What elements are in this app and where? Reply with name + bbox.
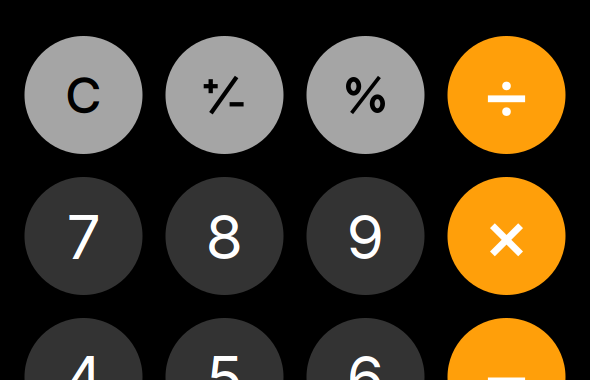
staticText: C: [65, 65, 102, 125]
button[interactable]: 7: [24, 177, 142, 295]
button[interactable]: Divide: [447, 36, 565, 154]
button[interactable]: Minus: [447, 318, 565, 380]
button[interactable]: 8: [165, 177, 283, 295]
staticText: 9: [346, 200, 384, 274]
staticText: 4: [64, 341, 103, 380]
staticText: 8: [205, 200, 243, 274]
button[interactable]: Plus minus: [165, 36, 283, 154]
staticText: 7: [66, 200, 100, 274]
button[interactable]: Multiply: [447, 177, 565, 295]
button[interactable]: C: [24, 36, 142, 154]
button[interactable]: Percent: [306, 36, 424, 154]
staticText: 5: [206, 341, 243, 380]
button[interactable]: 9: [306, 177, 424, 295]
button[interactable]: 5: [165, 318, 283, 380]
button[interactable]: 6: [306, 318, 424, 380]
staticText: 6: [346, 341, 384, 380]
button[interactable]: 4: [24, 318, 142, 380]
